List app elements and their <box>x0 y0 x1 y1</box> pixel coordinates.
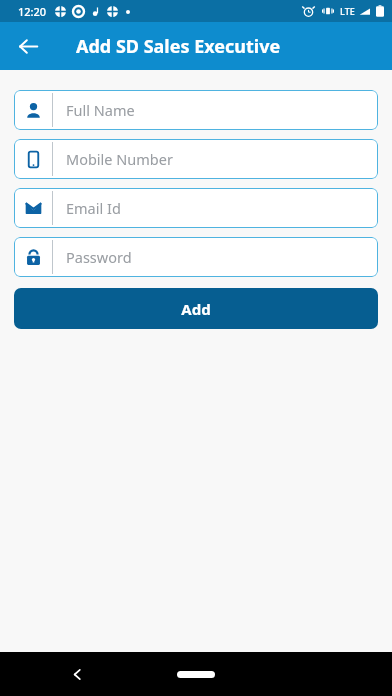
staticText: Add SD Sales Executive <box>76 34 281 59</box>
button[interactable]: Home <box>168 663 224 685</box>
staticText: Password <box>66 247 132 267</box>
staticText: LTE <box>340 5 355 17</box>
staticText: Add <box>181 299 211 319</box>
staticText: Email Id <box>66 198 121 218</box>
staticText: 12:20 <box>18 4 47 19</box>
button[interactable]: Full Name <box>14 90 378 130</box>
button[interactable]: Email Id <box>14 188 378 228</box>
staticText: Full Name <box>66 100 135 120</box>
button[interactable]: Back <box>8 26 48 66</box>
button[interactable]: Password <box>14 237 378 277</box>
button[interactable]: Add <box>14 288 378 329</box>
button[interactable]: Back <box>62 659 92 689</box>
button[interactable]: Mobile Number <box>14 139 378 179</box>
staticText: Mobile Number <box>66 149 173 169</box>
